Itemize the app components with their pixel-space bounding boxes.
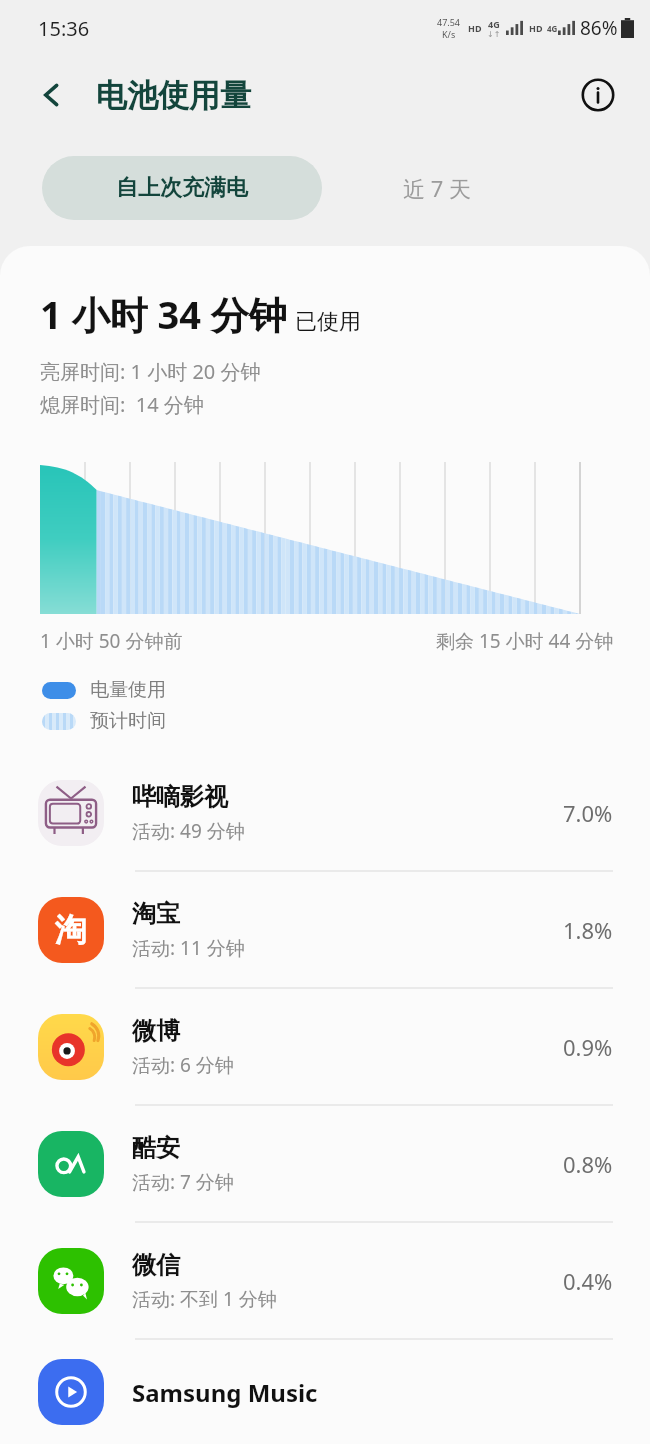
button[interactable]: Samsung Music [0,1340,650,1444]
button[interactable]: 哔嘀影视 [0,755,650,870]
staticText: 已使用 [295,308,361,336]
staticText: 自上次充满电 [116,174,248,202]
staticText: 微信 [132,1250,180,1280]
staticText: 淘宝 [132,899,180,929]
staticText: 15:36 [38,15,90,42]
staticText: 微博 [132,1016,180,1046]
staticText: HD [468,22,482,34]
button[interactable]: Back [26,69,78,121]
staticText: 0.9% [563,1032,613,1062]
staticText: 活动: 不到 1 分钟 [132,1286,277,1312]
button[interactable]: 微博 [0,989,650,1104]
staticText: 0.4% [563,1266,613,1296]
staticText: 电量使用 [90,678,166,702]
staticText: 近 7 天 [403,173,472,203]
staticText: HD [529,22,543,34]
staticText: 活动: 49 分钟 [132,818,245,844]
staticText: 1.8% [563,915,613,945]
staticText: 酷安 [132,1133,180,1163]
staticText: 47.54 [437,16,461,28]
button[interactable]: 微信 [0,1223,650,1338]
staticText: 0.8% [563,1149,613,1179]
staticText: 活动: 6 分钟 [132,1052,234,1078]
staticText: 熄屏时间: 14 分钟 [40,391,204,418]
staticText: 预计时间 [90,709,166,733]
staticText: 电池使用量 [96,76,251,115]
staticText: 1 小时 50 分钟前 [40,628,183,654]
staticText: ↓↑ [487,30,501,39]
staticText: 4G [547,23,558,34]
button[interactable]: 近 7 天 [322,156,552,220]
staticText: 哔嘀影视 [132,782,228,812]
button[interactable]: 淘 [0,872,650,987]
staticText: 活动: 11 分钟 [132,935,245,961]
staticText: 亮屏时间: 1 小时 20 分钟 [40,358,261,385]
staticText: 淘 [55,910,87,950]
staticText: 86% [580,15,618,41]
staticText: Samsung Music [132,1376,318,1409]
button[interactable]: 自上次充满电 [42,156,322,220]
staticText: 7.0% [563,798,613,828]
staticText: K/s [442,28,456,40]
staticText: 活动: 7 分钟 [132,1169,234,1195]
button[interactable]: 酷安 [0,1106,650,1221]
button[interactable]: Information [572,69,624,121]
staticText: 1 小时 34 分钟 [40,288,287,340]
staticText: 剩余 15 小时 44 分钟 [436,628,614,654]
staticText: 4G [488,18,500,30]
